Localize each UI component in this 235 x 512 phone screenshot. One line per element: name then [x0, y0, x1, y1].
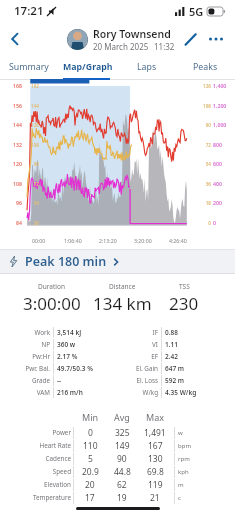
staticText: Map/Graph [63, 61, 113, 73]
staticText: bpm [178, 442, 191, 450]
staticText: VI [120, 340, 158, 349]
staticText: 20.9 [82, 466, 99, 478]
staticText: Summary [9, 61, 49, 73]
staticText: 21 [150, 492, 160, 504]
staticText: 17 [85, 492, 95, 504]
staticText: 17:21 [14, 3, 44, 19]
button[interactable]: Peak 180 min [8, 250, 235, 273]
staticText: kph [178, 468, 189, 476]
staticText: 36 [23, 220, 39, 226]
button[interactable]: Summary [0, 56, 58, 78]
staticText: Peaks [193, 61, 218, 73]
staticText: 62 [117, 479, 127, 491]
button[interactable]: Laps [117, 56, 176, 78]
staticText: 108 [23, 142, 39, 148]
staticText: 1,200 [213, 102, 234, 109]
staticText: w [178, 429, 183, 437]
button[interactable]: Edit [179, 28, 201, 50]
staticText: 54 [23, 200, 39, 206]
staticText: 144 [23, 103, 39, 109]
staticText: Heart Rate [8, 441, 71, 450]
staticText: rpm [178, 455, 190, 463]
staticText: 168 [0, 82, 22, 89]
staticText: 216 m/h [57, 388, 83, 397]
button[interactable]: Peaks [176, 56, 235, 78]
staticText: 1,400 [213, 82, 234, 89]
staticText: 69.8 [147, 466, 164, 478]
staticText: Rory Townsend [93, 27, 171, 41]
button[interactable]: Profile photo [67, 29, 88, 50]
staticText: 72 [23, 181, 39, 187]
staticText: m [178, 481, 184, 489]
staticText: 19 [117, 492, 127, 504]
staticText: 400 [213, 180, 234, 187]
staticText: 325 [115, 427, 130, 439]
staticText: 3:00:00 [23, 292, 81, 315]
staticText: c [178, 494, 181, 502]
button[interactable]: Back [0, 22, 30, 56]
staticText: 5 [88, 453, 93, 465]
staticText: Avg [114, 411, 130, 423]
staticText: 120 [0, 160, 22, 167]
staticText: 2:13:20 [99, 237, 117, 244]
staticText: Pwr. Bal. [8, 364, 50, 373]
staticText: 0 [213, 219, 234, 226]
staticText: 00:00 [32, 237, 46, 244]
staticText: 90 [195, 122, 211, 128]
staticText: Min [82, 411, 99, 423]
staticText: 167 [148, 440, 163, 452]
staticText: -- [57, 376, 62, 385]
staticText: 49.7/50.3 % [57, 364, 93, 373]
staticText: 647 m [165, 364, 185, 373]
staticText: W/kg [120, 388, 158, 397]
staticText: VAM [8, 388, 50, 397]
button[interactable]: More options [205, 28, 227, 50]
staticText: 5G [189, 4, 204, 19]
staticText: Distance [109, 282, 136, 291]
staticText: 126 [23, 122, 39, 128]
staticText: 1:06:40 [64, 237, 82, 244]
staticText: Pw:Hr [8, 352, 50, 361]
staticText: 2.17 % [57, 352, 78, 361]
staticText: Max [146, 411, 164, 423]
staticText: 1,491 [144, 427, 166, 439]
staticText: 90 [117, 453, 127, 465]
staticText: Elevation [8, 480, 71, 489]
staticText: 110 [83, 440, 98, 452]
staticText: 230 [169, 292, 199, 315]
staticText: 0 [195, 220, 211, 226]
staticText: 0 [88, 427, 93, 439]
staticText: 20 [85, 479, 95, 491]
staticText: 600 [213, 160, 234, 167]
staticText: 54 [195, 161, 211, 167]
staticText: TSS [179, 282, 190, 291]
staticText: 119 [148, 479, 163, 491]
staticText: 44.8 [114, 466, 131, 478]
staticText: Power [8, 428, 71, 437]
staticText: 0.88 [165, 328, 178, 337]
button[interactable]: Map/Graph [58, 56, 117, 78]
staticText: 126 [195, 83, 211, 89]
staticText: 4.35 W/kg [165, 388, 197, 397]
staticText: El. Gain [120, 364, 158, 373]
staticText: 108 [0, 180, 22, 187]
staticText: 3,514 kJ [57, 328, 82, 337]
staticText: 162 [23, 83, 39, 89]
staticText: 11:32 [154, 41, 175, 52]
staticText: 132 [0, 141, 22, 148]
staticText: 156 [0, 102, 22, 109]
staticText: 1,000 [213, 121, 234, 128]
staticText: 36 [195, 181, 211, 187]
staticText: 108 [195, 103, 211, 109]
staticText: Peak 180 min [25, 253, 107, 270]
staticText: NP [8, 340, 50, 349]
staticText: Laps [137, 61, 157, 73]
staticText: 130 [148, 453, 163, 465]
staticText: 18 [195, 200, 211, 206]
staticText: 3:20:00 [134, 237, 152, 244]
staticText: 800 [213, 141, 234, 148]
staticText: Work [8, 328, 50, 337]
staticText: 96 [0, 199, 22, 206]
staticText: Grade [8, 376, 50, 385]
staticText: El. Loss [120, 376, 158, 385]
